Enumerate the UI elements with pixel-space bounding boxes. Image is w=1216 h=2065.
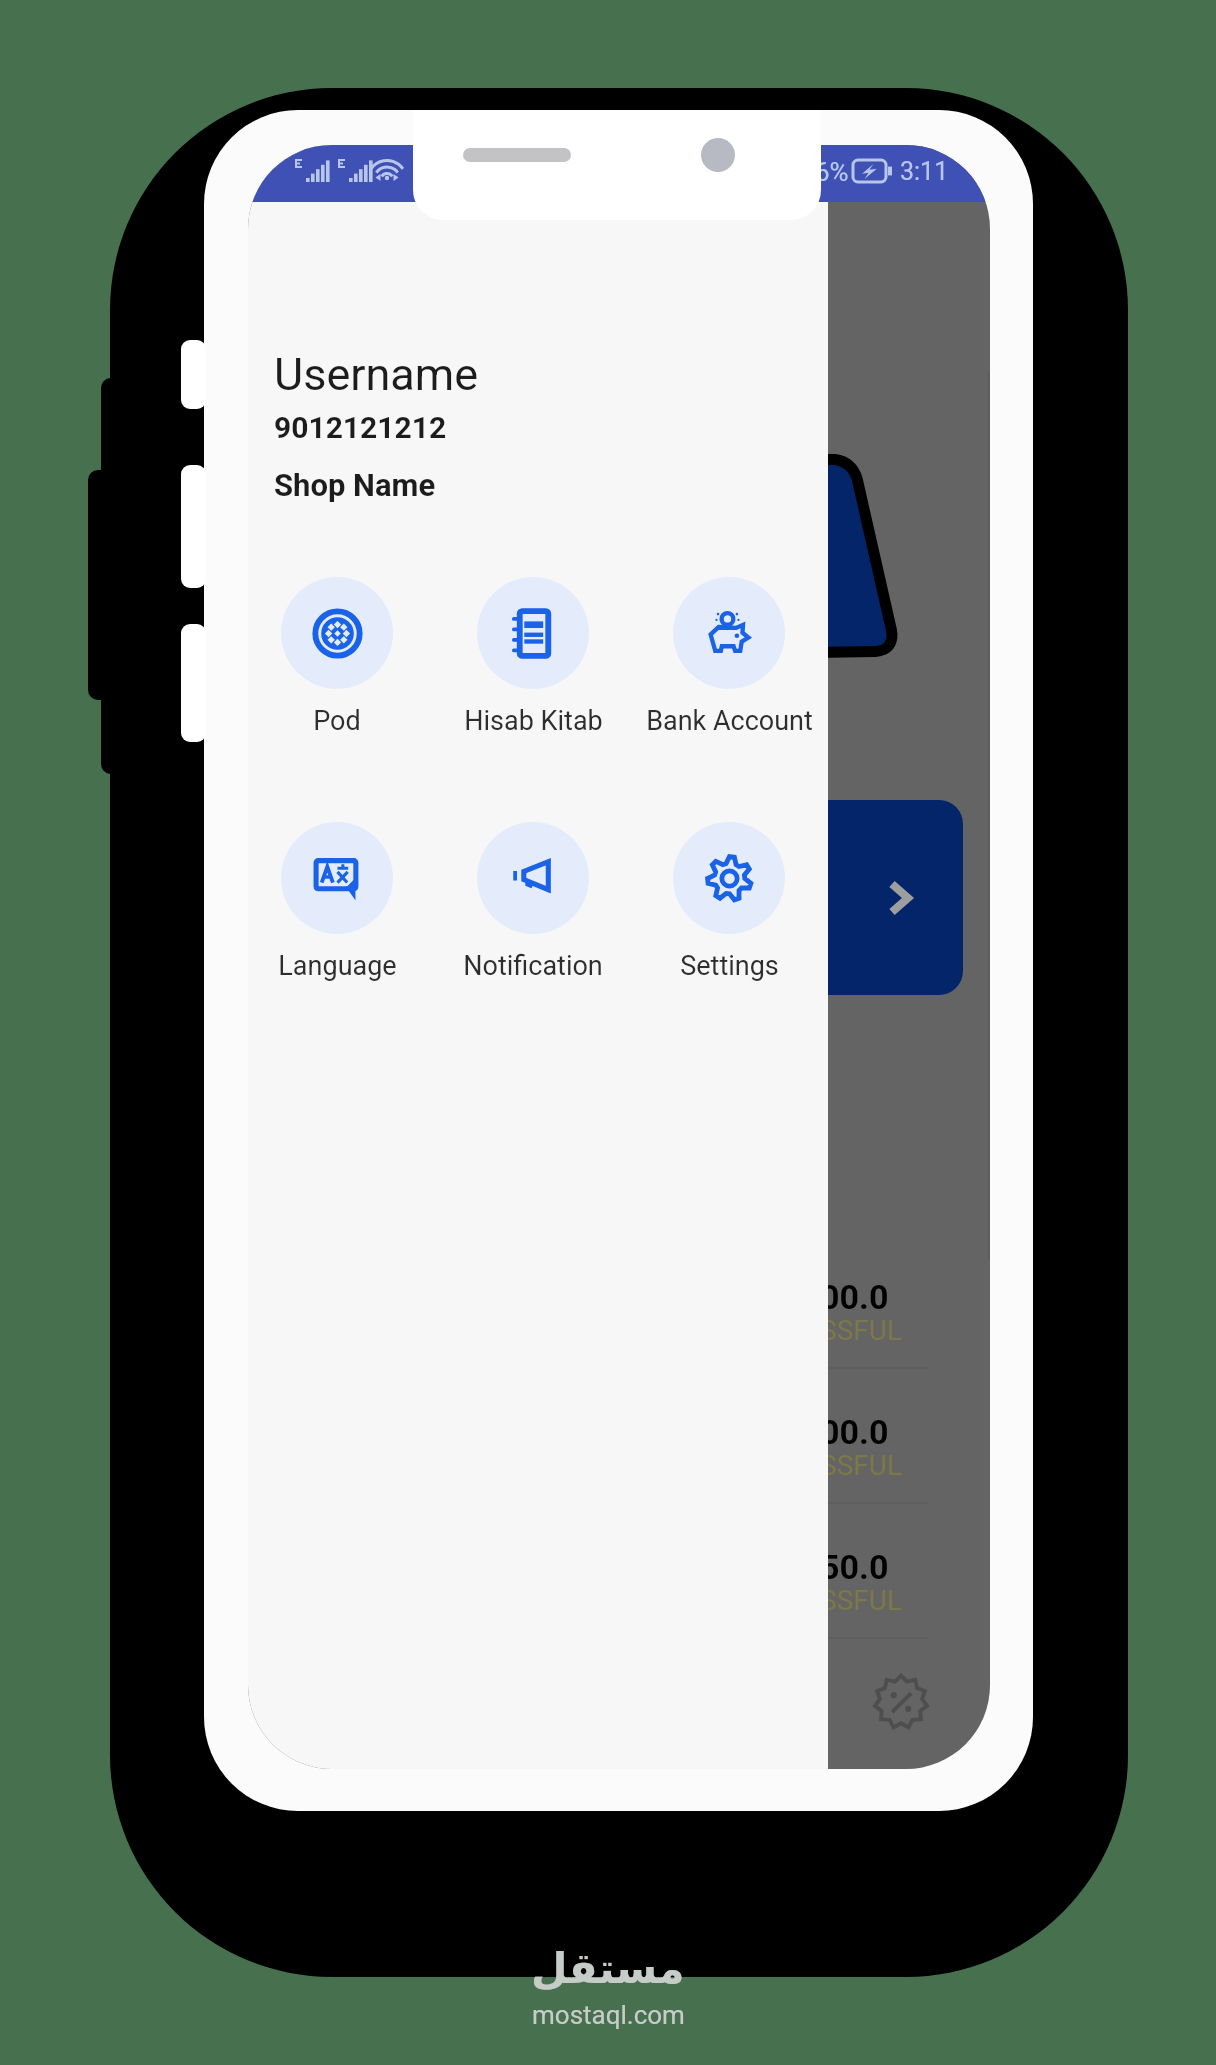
other: Settings xyxy=(673,822,785,934)
staticText: 00.0 xyxy=(820,1412,889,1452)
other: Bank Account xyxy=(673,577,785,689)
staticText: Shop Name xyxy=(274,467,436,503)
staticText: مستقل xyxy=(531,1944,685,1993)
staticText: Settings xyxy=(680,950,779,982)
staticText: 6% xyxy=(815,157,849,187)
staticText: Hisab Kitab xyxy=(464,705,603,737)
staticText: SSFUL xyxy=(820,1314,902,1347)
other: Hisab Kitab xyxy=(477,577,589,689)
button[interactable]: Bank Account xyxy=(614,577,844,737)
staticText: Language xyxy=(278,950,397,982)
button[interactable]: Notification xyxy=(418,822,648,982)
staticText: 00.0 xyxy=(820,1277,889,1317)
staticText: Pod xyxy=(313,705,361,737)
button[interactable]: Language xyxy=(248,822,452,982)
other: Pod xyxy=(281,577,393,689)
staticText: 3:11 xyxy=(900,157,949,186)
other: Language xyxy=(281,822,393,934)
staticText: mostaql.com xyxy=(532,2000,685,2030)
button[interactable]: Hisab Kitab xyxy=(418,577,648,737)
other: Notification xyxy=(477,822,589,934)
staticText: SSFUL xyxy=(820,1449,902,1482)
button[interactable]: Next xyxy=(788,800,963,995)
staticText: Username xyxy=(274,348,479,401)
staticText: Notification xyxy=(463,950,603,982)
button[interactable]: Pod xyxy=(248,577,452,737)
staticText: Bank Account xyxy=(646,705,813,737)
staticText: 50.0 xyxy=(820,1547,889,1587)
staticText: 9012121212 xyxy=(274,410,447,445)
button[interactable]: Offers xyxy=(873,1674,929,1730)
button[interactable]: Settings xyxy=(614,822,844,982)
staticText: SSFUL xyxy=(820,1584,902,1617)
